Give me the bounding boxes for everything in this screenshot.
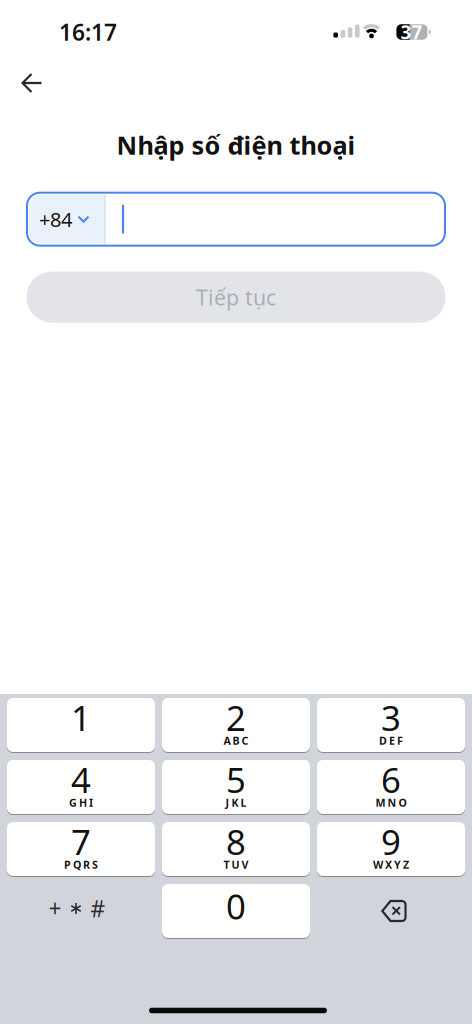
staticText: 1 — [71, 694, 91, 740]
staticText: + — [48, 893, 61, 923]
button[interactable] — [317, 884, 465, 938]
staticText: JKL — [225, 795, 246, 810]
button[interactable]: 1 — [7, 698, 155, 752]
staticText: MNO — [375, 795, 406, 810]
button[interactable]: 8 — [162, 822, 310, 876]
staticText: +84 — [39, 206, 72, 232]
staticText: GHI — [69, 795, 93, 810]
button[interactable]: +84 — [27, 193, 445, 246]
staticText: 0 — [226, 883, 246, 929]
button[interactable]: + — [7, 884, 155, 938]
staticText: TUV — [223, 857, 248, 872]
staticText: 7 — [71, 818, 91, 864]
button[interactable]: 2 — [162, 698, 310, 752]
button[interactable]: 0 — [162, 884, 310, 938]
staticText: 3 — [381, 694, 401, 740]
button[interactable]: 5 — [162, 760, 310, 814]
button[interactable]: 4 — [7, 760, 155, 814]
button[interactable]: +84 — [29, 195, 99, 244]
staticText: Tiếp tục — [196, 283, 276, 311]
staticText: 4 — [71, 756, 91, 802]
button[interactable]: 3 — [317, 698, 465, 752]
staticText: # — [90, 893, 105, 923]
staticText: 2 — [226, 694, 246, 740]
staticText: 8 — [226, 818, 246, 864]
button[interactable]: 6 — [317, 760, 465, 814]
staticText: ABC — [223, 733, 248, 748]
staticText: PQRS — [64, 857, 98, 872]
button[interactable]: 7 — [7, 822, 155, 876]
button[interactable]: 9 — [317, 822, 465, 876]
staticText: WXYZ — [373, 857, 409, 872]
staticText: DEF — [379, 733, 403, 748]
staticText: 5 — [226, 756, 246, 802]
staticText: 9 — [381, 818, 401, 864]
staticText: 37 — [400, 20, 422, 44]
staticText: Nhập số điện thoại — [116, 128, 355, 162]
button[interactable]: Tiếp tục — [26, 272, 445, 323]
button[interactable] — [17, 68, 47, 98]
staticText: 16:17 — [59, 17, 117, 47]
staticText: 6 — [381, 756, 401, 802]
